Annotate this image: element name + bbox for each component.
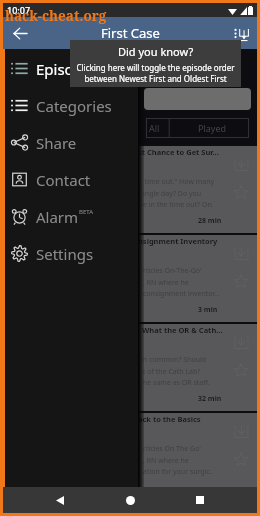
staticText: Contact — [36, 170, 91, 190]
staticText: Did you know? — [118, 44, 194, 59]
button[interactable]: Alarm — [3, 198, 138, 235]
button[interactable]: Sort order — [229, 21, 253, 45]
staticText: Alarm — [36, 207, 79, 227]
button[interactable]: Episodes — [3, 50, 138, 87]
staticText: ation for your surgic.. — [143, 467, 214, 477]
staticText: Clicking here will toggle the episode or… — [76, 62, 235, 83]
staticText: First Case — [101, 24, 160, 42]
staticText: ingle day? Do you — [143, 189, 202, 199]
staticText: nsignment Inventory — [138, 236, 218, 246]
staticText: Categories — [36, 96, 112, 116]
staticText: Share — [36, 133, 77, 153]
button[interactable]: st Chance to Get Sur... — [3, 146, 257, 233]
staticText: 10:07 — [7, 4, 31, 16]
staticText: n common? Should — [143, 355, 207, 365]
staticText: Played — [198, 122, 227, 134]
button[interactable]: ack to the Basics — [3, 413, 257, 500]
button[interactable]: Share — [3, 124, 138, 161]
staticText: time out." How many — [143, 177, 215, 187]
button[interactable]: Back — [47, 487, 73, 513]
button[interactable]: Settings — [3, 235, 138, 272]
staticText: ack to the Basics — [138, 414, 201, 424]
button[interactable]: All — [146, 118, 249, 138]
staticText: , RN where he — [143, 456, 189, 466]
button[interactable]: : What the OR & Cath... — [3, 324, 257, 411]
staticText: : What the OR & Cath... — [138, 325, 223, 335]
button[interactable]: Did you know? — [70, 40, 241, 87]
staticText: 3 min — [198, 305, 218, 315]
staticText: rticles On-The-Go' — [143, 266, 202, 276]
staticText: 32 min — [198, 394, 222, 404]
staticText: hack-cheat.org — [5, 7, 107, 25]
staticText: rticles On The Go' — [143, 444, 201, 454]
staticText: BETA — [79, 208, 93, 216]
staticText: st Chance to Get Sur... — [138, 147, 219, 157]
button[interactable] — [144, 88, 251, 110]
staticText: consignment inventor... — [143, 289, 220, 299]
staticText: Episodes — [36, 59, 99, 79]
button[interactable]: nsignment Inventory — [3, 235, 257, 322]
staticText: , RN where he — [143, 278, 189, 288]
button[interactable]: Home — [117, 487, 143, 513]
staticText: t of the Cath Lab? — [143, 367, 201, 377]
staticText: 28 min — [198, 216, 222, 226]
staticText: he same as OR staff. — [143, 378, 210, 388]
button[interactable]: Back — [7, 20, 33, 46]
button[interactable]: Contact — [3, 161, 138, 198]
button[interactable]: Categories — [3, 87, 138, 124]
staticText: Settings — [36, 244, 94, 264]
button[interactable]: Recents — [187, 487, 213, 513]
staticText: All — [149, 122, 160, 134]
staticText: e in the time out? On. — [143, 200, 214, 210]
